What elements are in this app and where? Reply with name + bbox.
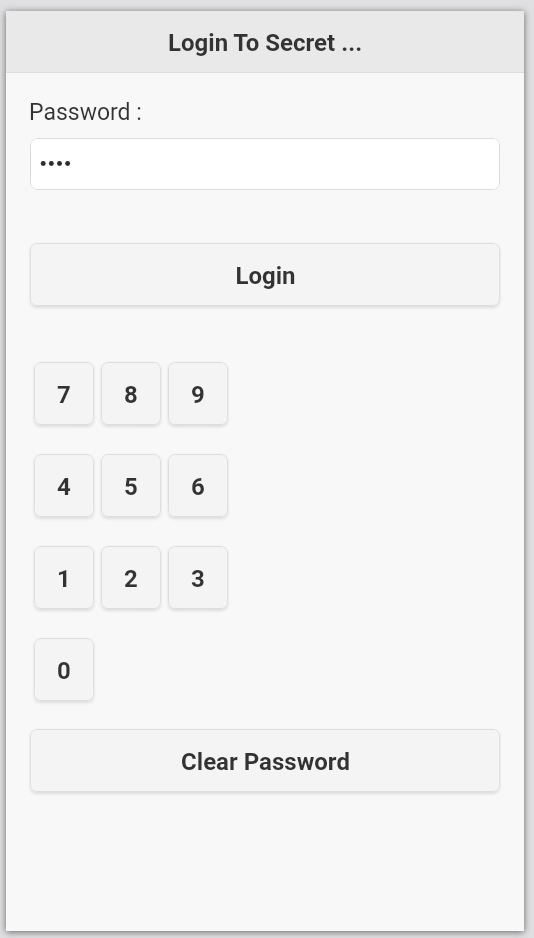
staticText: 5 (124, 473, 138, 501)
staticText: Clear Password (181, 748, 350, 776)
button[interactable]: 3 (168, 546, 228, 609)
staticText: 9 (191, 381, 205, 409)
staticText: Login (235, 262, 296, 290)
staticText: 8 (124, 381, 138, 409)
staticText: Password : (29, 99, 142, 126)
button[interactable]: Login (30, 243, 500, 306)
button[interactable]: Password input (30, 138, 500, 190)
staticText: 6 (191, 473, 205, 501)
button[interactable]: 8 (101, 362, 161, 425)
staticText: Login To Secret ... (168, 29, 363, 57)
staticText: 7 (57, 381, 71, 409)
staticText: 1 (57, 565, 71, 593)
staticText: 3 (191, 565, 205, 593)
staticText: 4 (57, 473, 71, 501)
button[interactable]: Login To Secret ... (6, 11, 524, 72)
button[interactable]: Clear Password (30, 729, 500, 792)
button[interactable]: 1 (34, 546, 94, 609)
button[interactable]: 6 (168, 454, 228, 517)
staticText: 0 (57, 657, 71, 685)
button[interactable]: 5 (101, 454, 161, 517)
staticText: 2 (124, 565, 138, 593)
button[interactable]: 7 (34, 362, 94, 425)
button[interactable]: 0 (34, 638, 94, 701)
button[interactable]: 4 (34, 454, 94, 517)
button[interactable]: 2 (101, 546, 161, 609)
button[interactable]: 9 (168, 362, 228, 425)
